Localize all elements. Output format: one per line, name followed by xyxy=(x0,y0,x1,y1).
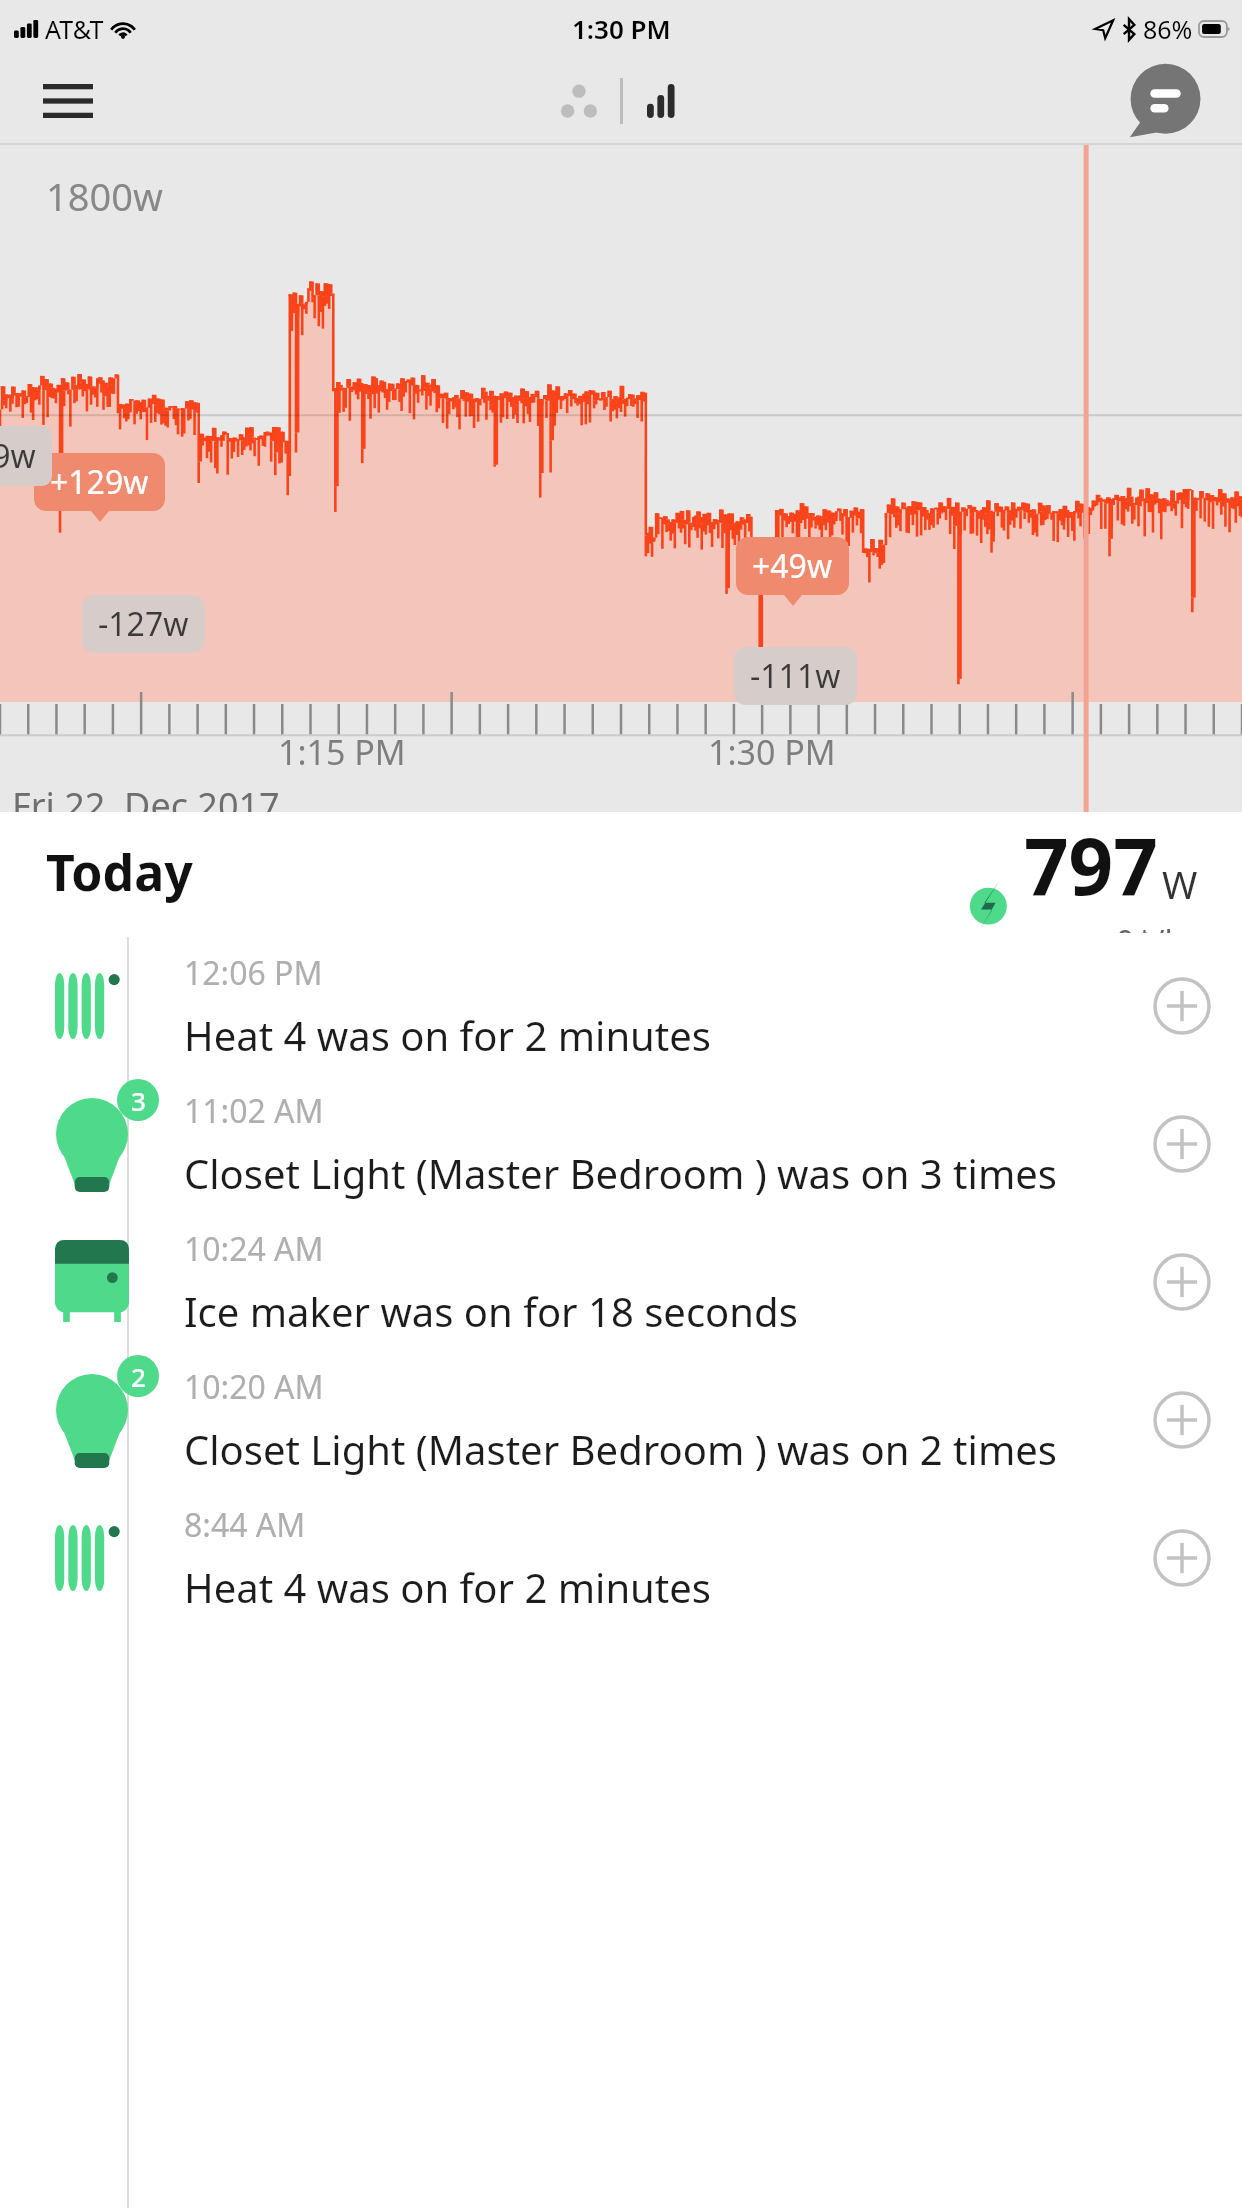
staticText: 11:02 AM xyxy=(184,1089,324,1133)
staticText: 10:20 AM xyxy=(184,1365,324,1409)
button[interactable]: Add xyxy=(1122,1213,1242,1351)
staticText: +129w xyxy=(50,460,149,504)
staticText: 2 xyxy=(131,1359,146,1394)
button[interactable]: Add xyxy=(1122,1489,1242,1627)
staticText: 0¢/hr xyxy=(1116,920,1198,933)
button[interactable]: Usage chart xyxy=(637,74,691,128)
staticText: Heat 4 was on for 2 minutes xyxy=(184,1560,711,1614)
button[interactable]: Add xyxy=(1122,937,1242,1075)
staticText: 1:15 PM xyxy=(278,729,406,775)
button[interactable]: 12:06 PM xyxy=(0,937,1242,1075)
staticText: W xyxy=(1162,858,1198,910)
staticText: 12:06 PM xyxy=(184,951,323,995)
staticText: 86% xyxy=(1143,12,1193,46)
staticText: 3 xyxy=(131,1083,146,1118)
button[interactable]: Add xyxy=(1122,1075,1242,1213)
staticText: Fri 22 Dec 2017 xyxy=(12,781,280,812)
staticText: Closet Light (Master Bedroom ) was on 2 … xyxy=(184,1422,1057,1476)
staticText: 1:30 PM xyxy=(572,11,671,46)
staticText: Ice maker was on for 18 seconds xyxy=(184,1284,798,1338)
staticText: -127w xyxy=(98,602,189,646)
staticText: Today xyxy=(46,838,193,906)
button[interactable]: Devices xyxy=(552,74,606,128)
staticText: AT&T xyxy=(45,12,104,46)
staticText: +49w xyxy=(752,544,833,588)
button[interactable]: 8:44 AM xyxy=(0,1489,1242,1627)
staticText: -111w xyxy=(750,654,841,698)
button[interactable]: 3 xyxy=(0,1075,1242,1213)
staticText: 797 xyxy=(1024,812,1158,918)
button[interactable]: 10:24 AM xyxy=(0,1213,1242,1351)
button[interactable]: Menu xyxy=(36,73,100,129)
staticText: Closet Light (Master Bedroom ) was on 3 … xyxy=(184,1146,1057,1200)
staticText: -9w xyxy=(0,434,36,478)
staticText: Heat 4 was on for 2 minutes xyxy=(184,1008,711,1062)
staticText: 1:30 PM xyxy=(708,729,836,775)
staticText: 10:24 AM xyxy=(184,1227,324,1271)
staticText: 8:44 AM xyxy=(184,1503,306,1547)
button[interactable]: Add xyxy=(1122,1351,1242,1489)
button[interactable]: Messages xyxy=(1124,61,1204,141)
staticText: 1800w xyxy=(46,170,163,222)
button[interactable]: 2 xyxy=(0,1351,1242,1489)
